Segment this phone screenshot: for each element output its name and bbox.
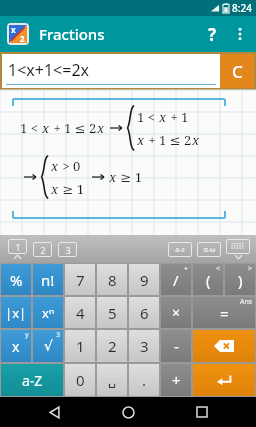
staticText: 8:24 xyxy=(232,1,252,15)
staticText: |x| xyxy=(5,304,27,322)
staticText: √ xyxy=(44,338,53,354)
staticText: / xyxy=(173,270,179,290)
staticText: 2 xyxy=(40,244,46,256)
staticText: 3 xyxy=(65,244,71,256)
button[interactable]: 9 xyxy=(129,264,159,295)
staticText: ≥ 1 xyxy=(117,168,142,186)
button[interactable]: × xyxy=(161,297,191,328)
button[interactable]: C xyxy=(220,54,254,88)
staticText: xⁿ xyxy=(42,304,55,322)
button[interactable]: 2 xyxy=(33,242,52,257)
staticText: x xyxy=(12,337,20,356)
staticText: 1 xyxy=(15,241,21,253)
button[interactable]: a-Z xyxy=(1,364,63,396)
button[interactable]: n! xyxy=(33,264,63,295)
button[interactable]: More options xyxy=(227,21,253,47)
button[interactable]: 5 xyxy=(97,297,127,328)
button[interactable]: Recents xyxy=(182,397,222,427)
staticText: % xyxy=(10,270,23,290)
staticText: x xyxy=(159,108,167,126)
staticText: α-ω xyxy=(203,245,216,255)
button[interactable]: 2 xyxy=(97,330,127,362)
staticText: x xyxy=(51,180,59,198)
staticText: - xyxy=(174,336,179,356)
button[interactable]: a-z xyxy=(168,242,192,257)
button[interactable]: 3 xyxy=(129,330,159,362)
button[interactable]: + xyxy=(161,364,191,396)
button[interactable]: Backspace xyxy=(193,330,255,362)
staticText: < xyxy=(216,264,221,274)
staticText: 1<x+1<=2x xyxy=(8,59,89,81)
staticText: x xyxy=(137,131,145,149)
staticText: ÷ xyxy=(184,264,189,274)
button[interactable]: 4 xyxy=(65,297,95,328)
button[interactable]: 8 xyxy=(97,264,127,295)
staticText: y xyxy=(25,330,29,340)
button[interactable]: 1<x+1<=2x xyxy=(2,54,220,88)
staticText: 6 xyxy=(140,303,149,323)
button[interactable]: App icon xyxy=(7,23,29,45)
staticText: ? xyxy=(208,23,217,46)
staticText: + 1 xyxy=(167,108,189,126)
staticText: + 1 ≤ 2 xyxy=(145,131,192,149)
staticText: Fractions xyxy=(39,24,105,44)
button[interactable]: 1 xyxy=(8,239,27,254)
button[interactable]: 6 xyxy=(129,297,159,328)
staticText: x xyxy=(42,119,50,137)
staticText: ( xyxy=(206,270,211,290)
button[interactable]: % xyxy=(1,264,31,295)
staticText: 1 xyxy=(76,336,85,356)
button[interactable]: xⁿ xyxy=(33,297,63,328)
staticText: 0 xyxy=(76,370,85,390)
staticText: 4 xyxy=(76,303,85,323)
button[interactable]: Enter xyxy=(193,364,255,396)
staticText: 9 xyxy=(140,270,149,290)
staticText: x xyxy=(11,24,16,35)
staticText: = xyxy=(220,303,229,323)
staticText: C xyxy=(232,60,243,83)
staticText: x xyxy=(109,168,117,186)
staticText: ) xyxy=(238,270,243,290)
staticText: > xyxy=(248,264,253,274)
button[interactable]: Back xyxy=(34,397,74,427)
staticText: x xyxy=(51,157,59,175)
button[interactable]: 0 xyxy=(65,364,95,396)
staticText: + 1 ≤ 2 xyxy=(50,119,97,137)
button[interactable]: Home xyxy=(108,397,148,427)
staticText: 3 xyxy=(56,330,61,340)
button[interactable]: |x| xyxy=(1,297,31,328)
staticText: a-Z xyxy=(22,371,43,390)
button[interactable]: ␣ xyxy=(97,364,127,396)
staticText: 1 < xyxy=(137,108,159,126)
staticText: 2 xyxy=(108,336,117,356)
staticText: 5 xyxy=(108,303,117,323)
button[interactable]: ( xyxy=(193,264,223,295)
staticText: > 0 xyxy=(59,157,81,175)
staticText: 7 xyxy=(76,270,85,290)
staticText: × xyxy=(172,303,181,322)
staticText: + xyxy=(172,370,181,390)
button[interactable]: Keyboard xyxy=(226,239,250,254)
staticText: a-z xyxy=(175,245,185,255)
staticText: 8 xyxy=(108,270,117,290)
staticText: ␣ xyxy=(108,373,117,388)
staticText: x xyxy=(192,131,200,149)
button[interactable]: 7 xyxy=(65,264,95,295)
button[interactable]: = xyxy=(193,297,255,328)
staticText: x xyxy=(97,119,105,137)
button[interactable]: √ xyxy=(33,330,63,362)
button[interactable]: . xyxy=(129,364,159,396)
button[interactable]: x xyxy=(1,330,31,362)
button[interactable]: 1 xyxy=(65,330,95,362)
button[interactable]: 3 xyxy=(58,242,77,257)
button[interactable]: - xyxy=(161,330,191,362)
button[interactable]: α-ω xyxy=(197,242,221,257)
staticText: n! xyxy=(41,270,55,290)
button[interactable]: Help xyxy=(197,19,227,49)
staticText: 2 xyxy=(20,33,25,44)
button[interactable]: / xyxy=(161,264,191,295)
staticText: ≥ 1 xyxy=(59,180,84,198)
staticText: 1 < xyxy=(20,119,42,137)
button[interactable]: ) xyxy=(225,264,255,295)
staticText: Ans xyxy=(240,297,253,307)
